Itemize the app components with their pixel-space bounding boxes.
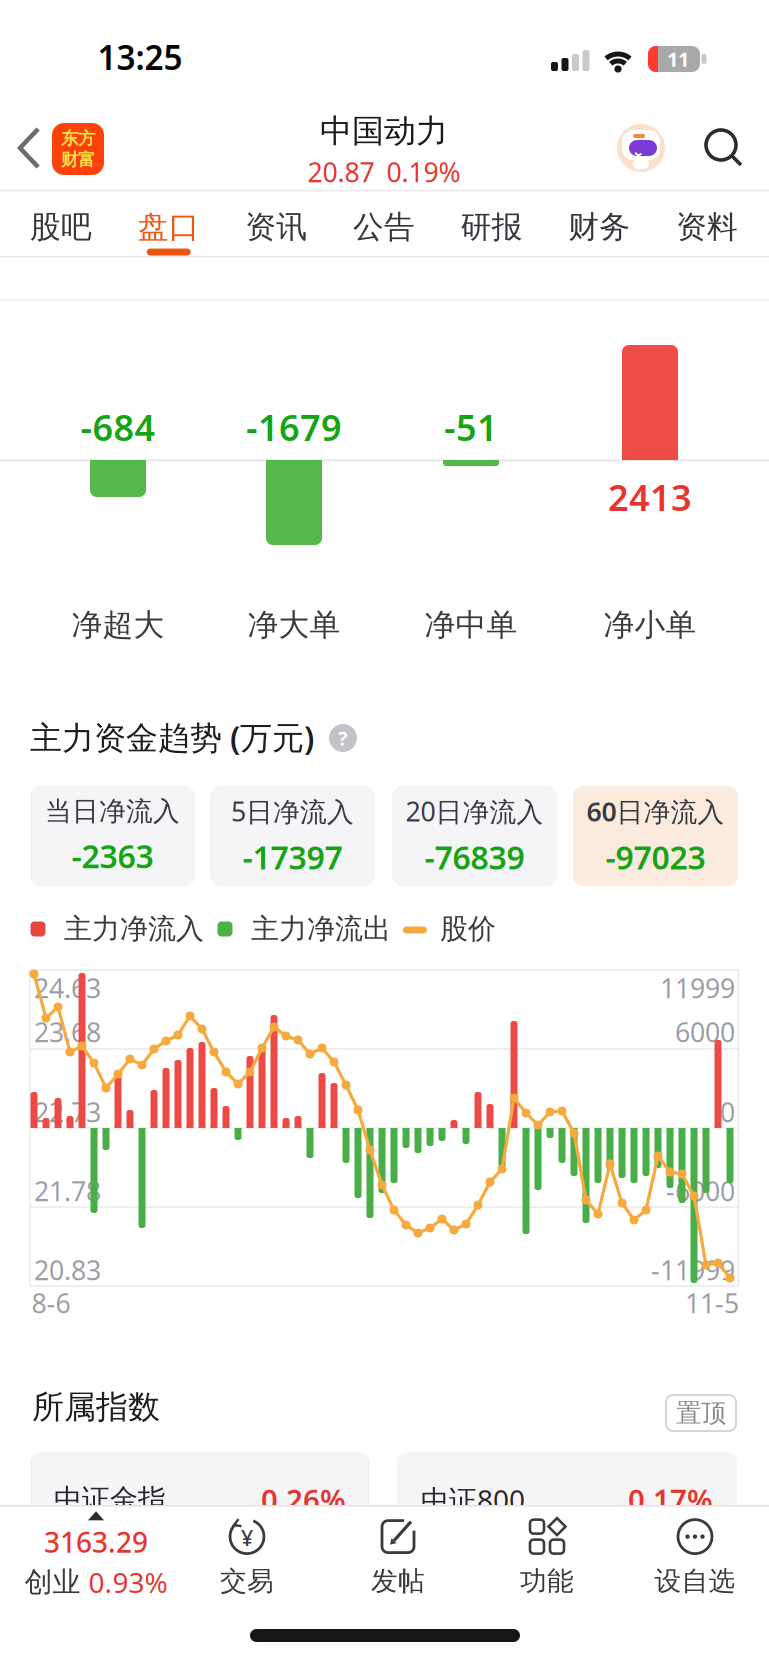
staticText: 11999 (660, 970, 735, 1006)
staticText: 5日净流入 (231, 793, 354, 829)
staticText: -6000 (666, 1173, 735, 1209)
button[interactable]: ¥ (187, 1509, 307, 1605)
staticText: 0.93% (88, 1563, 167, 1601)
button[interactable]: 研报 (444, 196, 540, 258)
staticText: 20.87 (307, 154, 374, 190)
staticText: 11 (667, 46, 689, 72)
staticText: 20日净流入 (405, 793, 543, 829)
staticText: 24.63 (34, 970, 101, 1006)
button[interactable]: 置顶 (665, 1394, 737, 1432)
staticText: -76839 (424, 836, 524, 878)
staticText: 财务 (568, 208, 630, 246)
staticText: 所属指数 (32, 1387, 160, 1427)
staticText: 净小单 (603, 606, 696, 644)
staticText: ? (338, 725, 348, 751)
button[interactable]: 资料 (659, 196, 755, 258)
button[interactable]: 财务 (551, 196, 647, 258)
staticText: 财富 (61, 149, 95, 170)
button[interactable]: 东方财富 (52, 123, 104, 175)
staticText: -51 (444, 403, 498, 451)
staticText: 60日净流入 (586, 793, 724, 829)
staticText: 发帖 (371, 1565, 425, 1597)
button[interactable]: 3163.29 (16, 1508, 176, 1604)
staticText: 中证金指 (54, 1482, 166, 1517)
staticText: 当日净流入 (45, 795, 180, 828)
staticText: 20.83 (34, 1252, 101, 1288)
button[interactable]: 盘口 (121, 196, 217, 258)
staticText: ¥ (241, 1523, 253, 1552)
button[interactable]: Back (12, 123, 48, 173)
staticText: 11-5 (685, 1285, 739, 1321)
staticText: 主力资金趋势 (万元) (30, 716, 314, 758)
staticText: 净中单 (424, 606, 517, 644)
staticText: 0 (720, 1094, 735, 1130)
staticText: 股吧 (30, 208, 92, 246)
button[interactable]: 发帖 (338, 1509, 458, 1605)
button[interactable]: Help (329, 724, 357, 752)
button[interactable]: 公告 (336, 196, 432, 258)
staticText: 22.73 (34, 1094, 101, 1130)
staticText: 23.68 (34, 1014, 101, 1050)
staticText: 0.19% (386, 154, 460, 190)
staticText: 净超大 (71, 606, 164, 644)
button[interactable]: 功能 (487, 1509, 607, 1605)
staticText: 资讯 (245, 208, 307, 246)
staticText: 13:25 (97, 35, 182, 79)
staticText: -1679 (246, 403, 342, 451)
staticText: 股价 (440, 912, 496, 946)
staticText: 设自选 (654, 1565, 735, 1597)
button[interactable]: 20日净流入 (392, 786, 557, 886)
button[interactable]: 5日净流入 (210, 786, 375, 886)
button[interactable]: Search (701, 126, 745, 170)
staticText: 主力净流入 (64, 912, 204, 946)
button[interactable]: 中证金指 (30, 1452, 370, 1562)
staticText: 功能 (520, 1565, 574, 1597)
staticText: 主力净流出 (251, 912, 391, 946)
button[interactable]: 资讯 (228, 196, 324, 258)
staticText: 中证800 (421, 1481, 525, 1518)
button[interactable]: 设自选 (635, 1509, 755, 1605)
button[interactable]: 60日净流入 (573, 786, 738, 886)
staticText: -684 (80, 403, 155, 451)
staticText: 6000 (675, 1014, 735, 1050)
staticText: 2413 (608, 473, 692, 521)
staticText: -97023 (605, 836, 705, 878)
staticText: 0.26% (261, 1480, 346, 1519)
staticText: 8-6 (31, 1285, 70, 1321)
button[interactable]: AI assistant (617, 124, 665, 172)
staticText: 净大单 (247, 606, 340, 644)
staticText: -11999 (651, 1252, 735, 1288)
button[interactable]: 当日净流入 (30, 786, 195, 886)
staticText: 资料 (676, 208, 738, 246)
staticText: 21.78 (34, 1173, 101, 1209)
staticText: 中国动力 (320, 111, 448, 151)
staticText: -17397 (242, 836, 342, 878)
staticText: -2363 (71, 835, 153, 877)
staticText: 3163.29 (44, 1523, 148, 1560)
staticText: 交易 (220, 1565, 274, 1597)
staticText: 置顶 (676, 1397, 726, 1428)
button[interactable]: 股吧 (13, 196, 109, 258)
staticText: 创业 (24, 1565, 80, 1599)
staticText: 东方 (61, 128, 95, 149)
button[interactable]: 中证800 (397, 1452, 737, 1562)
staticText: 研报 (461, 208, 523, 246)
staticText: 公告 (353, 208, 415, 246)
staticText: 0.17% (628, 1480, 713, 1519)
staticText: 盘口 (138, 208, 200, 246)
